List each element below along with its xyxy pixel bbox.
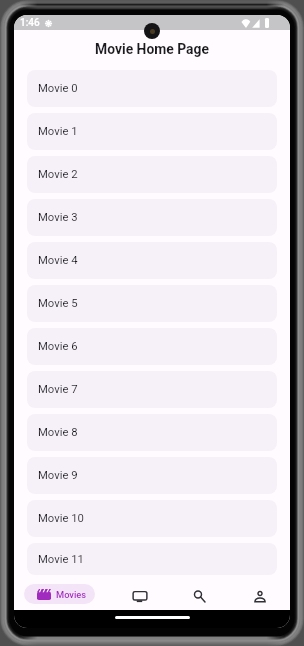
- button[interactable]: Movies: [24, 584, 95, 604]
- button[interactable]: Movie 6: [27, 328, 277, 365]
- button[interactable]: Movie 5: [27, 285, 277, 322]
- staticText: Movie 1: [38, 125, 78, 138]
- staticText: Movie 2: [38, 168, 78, 181]
- button[interactable]: TV Shows: [123, 575, 157, 610]
- staticText: Movie 0: [38, 82, 78, 95]
- staticText: Movie 11: [38, 553, 84, 566]
- staticText: Movie 6: [38, 340, 78, 353]
- staticText: Movie 5: [38, 297, 78, 310]
- button[interactable]: Search: [181, 575, 215, 610]
- staticText: Movie 8: [38, 426, 78, 439]
- staticText: Movies: [56, 589, 87, 600]
- button[interactable]: Movie 11: [27, 543, 277, 575]
- button[interactable]: Movie 1: [27, 113, 277, 150]
- staticText: Movie 9: [38, 469, 78, 482]
- button[interactable]: Movie 3: [27, 199, 277, 236]
- button[interactable]: Movie 7: [27, 371, 277, 408]
- staticText: Movie 4: [38, 254, 78, 267]
- button[interactable]: Movie 2: [27, 156, 277, 193]
- staticText: Movie 3: [38, 211, 78, 224]
- button[interactable]: Movie 10: [27, 500, 277, 537]
- staticText: Movie Home Page: [95, 41, 209, 57]
- button[interactable]: Movie 0: [27, 70, 277, 107]
- button[interactable]: Movie 4: [27, 242, 277, 279]
- button[interactable]: Movie 8: [27, 414, 277, 451]
- staticText: Movie 7: [38, 383, 78, 396]
- button[interactable]: Profile: [243, 575, 277, 610]
- staticText: Movie 10: [38, 512, 84, 525]
- button[interactable]: Movie 9: [27, 457, 277, 494]
- staticText: 1:46: [20, 17, 40, 29]
